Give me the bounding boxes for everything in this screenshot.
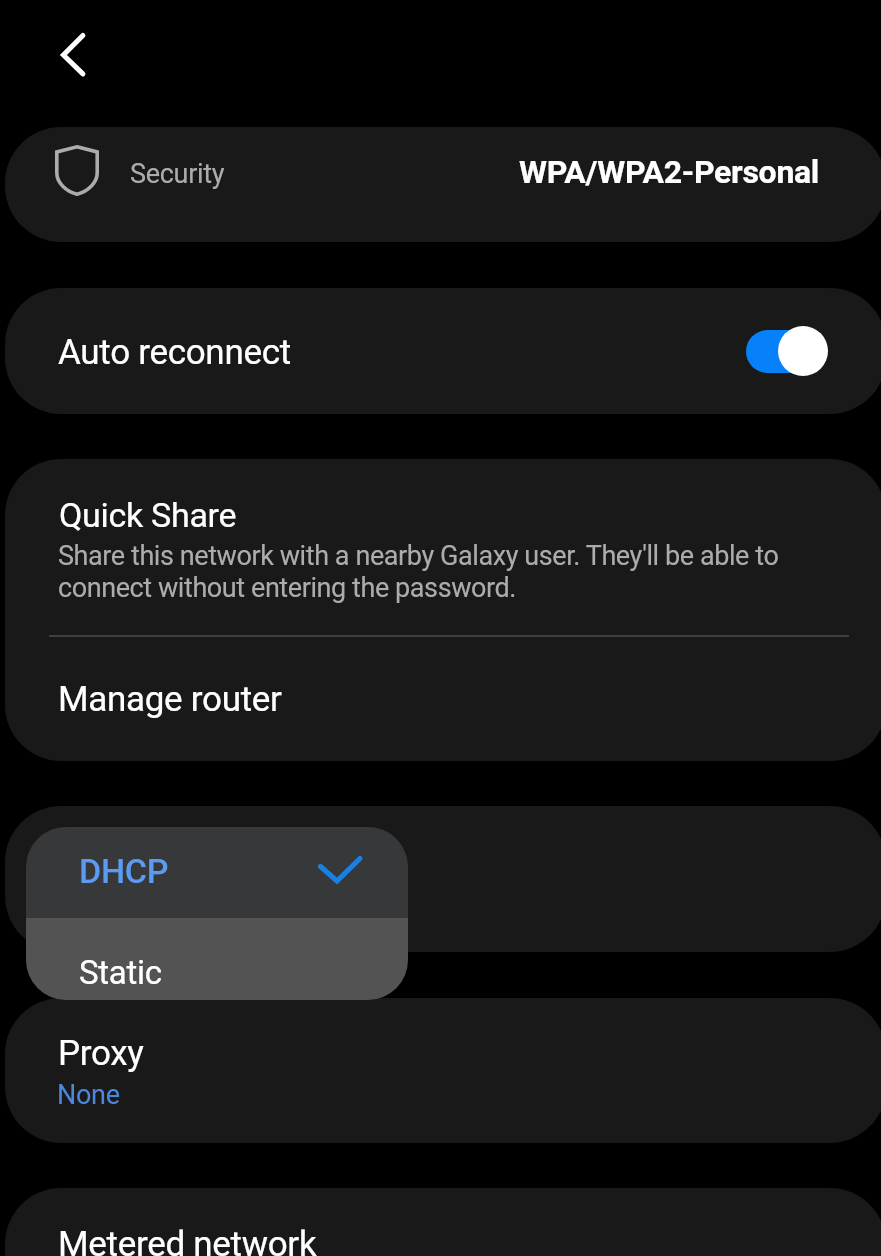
staticText: Manage router (58, 679, 282, 720)
staticText: Proxy (58, 1033, 144, 1074)
button[interactable]: Manage router (5, 637, 881, 761)
staticText: Quick Share (59, 495, 237, 535)
button[interactable]: Auto reconnect (5, 288, 881, 414)
staticText: Metered network (58, 1224, 317, 1256)
button[interactable] (5, 806, 881, 952)
button[interactable]: Quick Share (5, 459, 881, 636)
staticText: DHCP (79, 851, 169, 891)
staticText: Share this network with a nearby Galaxy … (58, 540, 779, 603)
button[interactable]: DHCP (26, 827, 408, 918)
staticText: None (57, 1079, 120, 1111)
button[interactable]: Proxy (5, 998, 881, 1143)
staticText: Security (130, 158, 225, 190)
button[interactable]: Security (5, 127, 881, 242)
staticText: Auto reconnect (58, 332, 291, 373)
button[interactable]: Auto reconnect, on (746, 326, 828, 376)
button[interactable]: Metered network (5, 1188, 881, 1256)
staticText: WPA/WPA2-Personal (519, 153, 820, 191)
button[interactable]: Navigate up (30, 12, 118, 100)
button[interactable]: Static (26, 918, 408, 1000)
staticText: Static (79, 953, 162, 992)
